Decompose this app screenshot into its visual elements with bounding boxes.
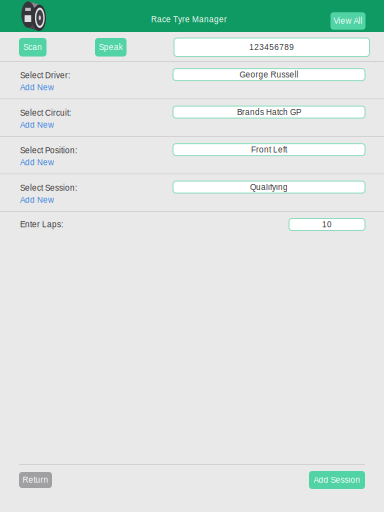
staticText: Select Position: (20, 146, 77, 155)
button[interactable]: Scan (19, 38, 46, 56)
staticText: Add New (20, 195, 54, 205)
staticText: View All (333, 16, 362, 26)
button[interactable]: Add New (20, 119, 54, 131)
staticText: Select Session: (20, 183, 77, 193)
staticText: Select Circuit: (20, 108, 71, 118)
staticText: Qualifying (250, 183, 288, 192)
staticText: Enter Laps: (20, 220, 63, 229)
staticText: 10 (322, 220, 332, 229)
staticText: Brands Hatch GP (237, 108, 301, 117)
button[interactable]: Return (19, 472, 52, 488)
staticText: Speak (99, 43, 123, 52)
staticText: Add New (20, 158, 54, 167)
button[interactable]: Add New (20, 81, 54, 93)
staticText: Race Tyre Manager (151, 15, 227, 24)
staticText: Add Session (313, 475, 360, 485)
staticText: 123456789 (249, 43, 294, 52)
button[interactable]: View All (330, 12, 365, 30)
staticText: Scan (23, 43, 42, 52)
button[interactable]: Speak (95, 38, 126, 56)
staticText: George Russell (239, 70, 298, 79)
button[interactable]: Add New (20, 194, 54, 206)
staticText: Front Left (251, 145, 287, 154)
staticText: Add New (20, 120, 54, 130)
staticText: Select Driver: (20, 71, 70, 80)
staticText: Return (22, 475, 48, 485)
button[interactable]: Add New (20, 156, 54, 168)
staticText: Add New (20, 83, 54, 92)
button[interactable]: Add Session (309, 471, 365, 489)
